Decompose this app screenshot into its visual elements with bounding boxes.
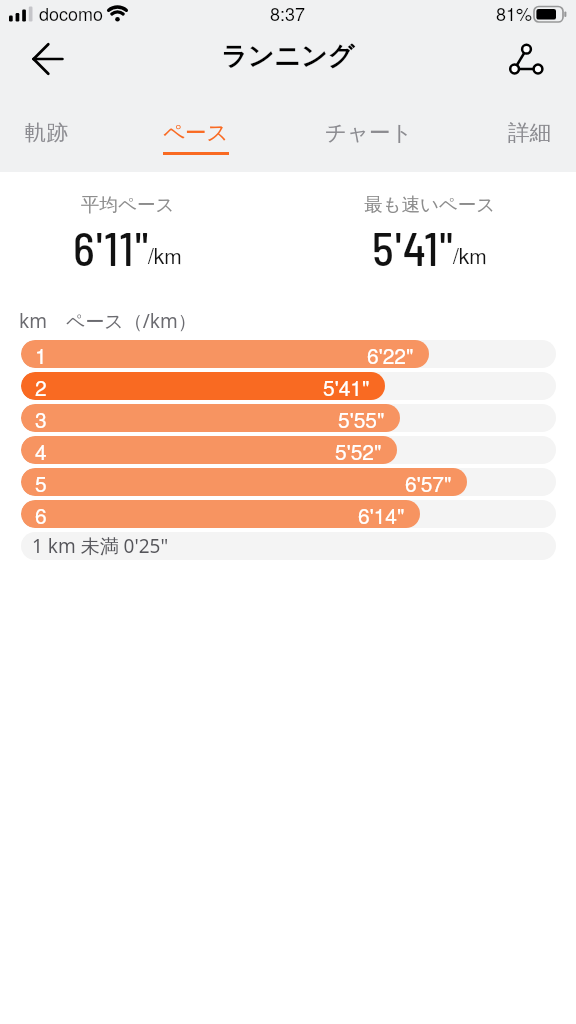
staticText: 81%	[496, 0, 533, 26]
staticText: 1	[35, 340, 47, 368]
button[interactable]: 3	[21, 404, 556, 432]
staticText: ペース	[163, 119, 229, 146]
staticText: 8:37	[270, 0, 306, 26]
staticText: 1 km 未満 0'25"	[32, 533, 169, 559]
staticText: 6	[35, 500, 47, 528]
staticText: 5	[35, 468, 47, 496]
button[interactable]: Share	[497, 30, 555, 87]
staticText: チャート	[325, 119, 413, 146]
button[interactable]: 1	[21, 340, 556, 368]
staticText: 5'41"	[323, 372, 370, 400]
button[interactable]: Back	[19, 30, 77, 87]
staticText: 6'57"	[405, 468, 452, 496]
staticText: 5'55"	[338, 404, 385, 432]
button[interactable]: 詳細	[508, 87, 551, 152]
button[interactable]: 5	[21, 468, 556, 496]
staticText: 2	[35, 372, 47, 400]
staticText: 最も速いペース	[364, 193, 496, 216]
staticText: 6'11"	[73, 220, 150, 275]
button[interactable]: 2	[21, 372, 556, 400]
staticText: /km	[453, 240, 487, 270]
staticText: 4	[35, 436, 47, 464]
staticText: 5'41"	[372, 220, 455, 275]
staticText: 6'22"	[367, 340, 414, 368]
button[interactable]: 4	[21, 436, 556, 464]
staticText: 平均ペース	[81, 193, 175, 216]
button[interactable]: 1 km 未満 0'25"	[21, 532, 556, 560]
staticText: km ペース（/km）	[19, 308, 197, 334]
staticText: 軌跡	[25, 119, 68, 146]
staticText: 5'52"	[335, 436, 382, 464]
button[interactable]: ペース	[163, 87, 229, 155]
staticText: ランニング	[221, 40, 355, 73]
button[interactable]: チャート	[325, 87, 413, 152]
button[interactable]: 軌跡	[25, 87, 68, 152]
staticText: 3	[35, 404, 47, 432]
staticText: docomo	[39, 0, 104, 26]
staticText: 詳細	[508, 119, 551, 146]
button[interactable]: 6	[21, 500, 556, 528]
staticText: 6'14"	[358, 500, 405, 528]
staticText: /km	[148, 240, 182, 270]
